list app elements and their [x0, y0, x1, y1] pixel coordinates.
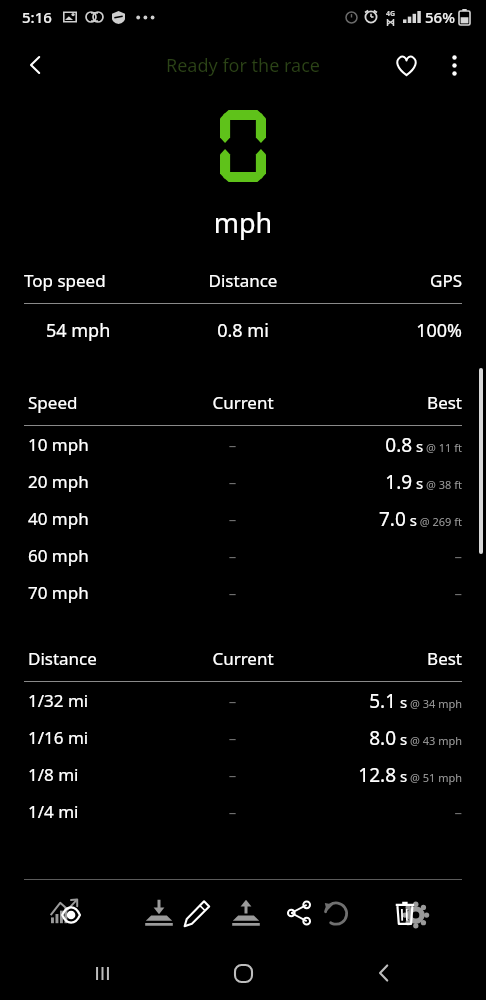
button[interactable]: 1/4 mi [0, 793, 486, 830]
staticText: – [163, 728, 302, 748]
staticText: 70 mph [28, 581, 163, 604]
button[interactable]: 70 mph [0, 574, 486, 611]
staticText: 1/4 mi [28, 800, 163, 823]
staticText: 56% [425, 7, 455, 27]
staticText: – [454, 583, 462, 603]
staticText: – [163, 509, 302, 529]
staticText: mph [0, 204, 486, 241]
button[interactable]: Recents [78, 949, 126, 997]
staticText: 8.0 s @ 43 mph [369, 725, 462, 751]
button[interactable]: Back [12, 41, 60, 89]
staticText: 1/32 mi [28, 689, 163, 712]
staticText: 54 mph [46, 318, 170, 343]
staticText: Best [316, 391, 462, 414]
button[interactable]: Back [360, 949, 408, 997]
button[interactable]: 40 mph [0, 500, 486, 537]
staticText: – [163, 435, 302, 455]
staticText: Top speed [24, 269, 170, 292]
staticText: 5:16 [22, 7, 52, 27]
staticText: – [163, 546, 302, 566]
staticText: – [163, 765, 302, 785]
staticText: 20 mph [28, 470, 163, 493]
staticText: 1/8 mi [28, 763, 163, 786]
staticText: 1.9 s @ 38 ft [385, 469, 462, 495]
staticText: – [163, 691, 302, 711]
button[interactable]: 1/32 mi [0, 682, 486, 719]
staticText: Best [316, 647, 462, 670]
staticText: GPS [316, 269, 462, 292]
staticText: 100% [316, 318, 462, 343]
button[interactable]: Favorite [382, 41, 430, 89]
staticText: Speed [28, 391, 170, 414]
staticText: 60 mph [28, 544, 163, 567]
staticText: Ready for the race [166, 53, 320, 78]
staticText: 5.1 s @ 34 mph [369, 688, 462, 714]
staticText: 12.8 s @ 51 mph [358, 762, 462, 788]
button[interactable]: Reset [312, 889, 360, 937]
staticText: Distance [28, 647, 170, 670]
staticText: – [454, 802, 462, 822]
staticText: 40 mph [28, 507, 163, 530]
button[interactable]: View stats [40, 886, 94, 940]
staticText: 0.8 mi [170, 318, 316, 343]
staticText: 1/16 mi [28, 726, 163, 749]
button[interactable]: 10 mph [0, 426, 486, 463]
button[interactable]: Share [275, 889, 323, 937]
staticText: 4G [386, 9, 396, 19]
button[interactable]: 60 mph [0, 537, 486, 574]
staticText: Distance [170, 269, 316, 292]
button[interactable]: 1/8 mi [0, 756, 486, 793]
staticText: Current [170, 391, 316, 414]
staticText: 0.8 s @ 11 ft [385, 432, 462, 458]
staticText: – [454, 546, 462, 566]
button[interactable]: Delete settings [382, 886, 436, 940]
staticText: – [163, 583, 302, 603]
button[interactable]: 1/16 mi [0, 719, 486, 756]
button[interactable]: 20 mph [0, 463, 486, 500]
button[interactable]: Export [222, 889, 270, 937]
button[interactable]: Edit [172, 889, 220, 937]
staticText: 10 mph [28, 433, 163, 456]
button[interactable]: More options [430, 41, 478, 89]
staticText: Current [170, 647, 316, 670]
button[interactable]: Import [135, 889, 183, 937]
staticText: – [163, 472, 302, 492]
staticText: 7.0 s @ 269 ft [378, 506, 462, 532]
staticText: – [163, 802, 302, 822]
button[interactable]: Home [219, 949, 267, 997]
